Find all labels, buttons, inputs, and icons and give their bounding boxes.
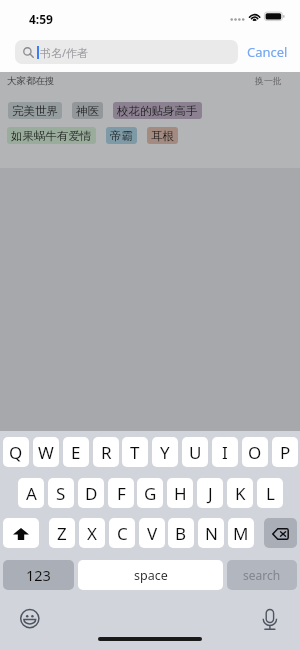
staticText: M xyxy=(233,522,249,545)
button[interactable]: I xyxy=(212,437,238,467)
button[interactable]: Emoji xyxy=(18,607,42,631)
button[interactable]: O xyxy=(242,437,268,467)
button[interactable]: U xyxy=(182,437,208,467)
staticText: W xyxy=(38,441,54,464)
button[interactable]: N xyxy=(198,518,224,548)
button[interactable]: 123 xyxy=(3,560,74,590)
button[interactable]: J xyxy=(197,478,223,508)
button[interactable]: R xyxy=(93,437,119,467)
staticText: 帝霸 xyxy=(110,129,133,143)
staticText: X xyxy=(87,522,97,545)
staticText: Z xyxy=(57,522,67,545)
button[interactable]: 书名/作者 xyxy=(15,40,238,64)
staticText: E xyxy=(71,441,81,464)
button[interactable]: L xyxy=(257,478,283,508)
button[interactable]: F xyxy=(108,478,134,508)
staticText: D xyxy=(85,482,98,505)
button[interactable]: M xyxy=(228,518,254,548)
staticText: P xyxy=(280,441,291,464)
button[interactable]: search xyxy=(227,560,297,590)
button[interactable]: K xyxy=(227,478,253,508)
button[interactable]: H xyxy=(167,478,193,508)
staticText: 123 xyxy=(26,565,51,585)
button[interactable]: 校花的贴身高手 xyxy=(113,102,202,119)
staticText: B xyxy=(175,522,187,545)
button[interactable]: 帝霸 xyxy=(106,127,137,144)
staticText: 完美世界 xyxy=(12,104,58,118)
staticText: 书名/作者 xyxy=(40,45,89,60)
staticText: F xyxy=(117,482,126,505)
staticText: I xyxy=(222,441,228,464)
staticText: S xyxy=(56,482,66,505)
staticText: T xyxy=(130,441,140,464)
button[interactable]: Cancel xyxy=(244,42,289,62)
button[interactable]: A xyxy=(18,478,44,508)
button[interactable]: Shift xyxy=(3,518,39,548)
staticText: search xyxy=(243,567,281,583)
button[interactable]: B xyxy=(168,518,194,548)
button[interactable]: space xyxy=(78,560,223,590)
button[interactable]: V xyxy=(139,518,165,548)
staticText: space xyxy=(134,567,168,584)
button[interactable]: 神医 xyxy=(72,102,103,119)
button[interactable]: 耳根 xyxy=(147,127,178,144)
staticText: V xyxy=(147,522,158,545)
button[interactable]: C xyxy=(109,518,135,548)
staticText: R xyxy=(101,441,112,464)
staticText: U xyxy=(189,441,202,464)
button[interactable]: P xyxy=(272,437,298,467)
staticText: L xyxy=(266,482,275,505)
staticText: C xyxy=(117,522,128,545)
button[interactable]: E xyxy=(63,437,89,467)
button[interactable]: X xyxy=(79,518,105,548)
button[interactable]: 换一批 xyxy=(251,72,285,86)
button[interactable]: S xyxy=(48,478,74,508)
staticText: 大家都在搜 xyxy=(7,75,55,87)
staticText: 换一批 xyxy=(255,75,282,86)
button[interactable]: Backspace xyxy=(264,518,297,548)
staticText: 如果蜗牛有爱情 xyxy=(11,129,92,143)
button[interactable]: 完美世界 xyxy=(8,102,62,119)
button[interactable]: 如果蜗牛有爱情 xyxy=(7,127,96,144)
staticText: 4:59 xyxy=(29,11,53,27)
button[interactable]: T xyxy=(122,437,148,467)
button[interactable]: Q xyxy=(3,437,29,467)
staticText: 神医 xyxy=(76,104,99,118)
button[interactable]: Y xyxy=(152,437,178,467)
staticText: A xyxy=(26,482,37,505)
staticText: Q xyxy=(9,441,23,464)
staticText: K xyxy=(235,482,246,505)
staticText: Y xyxy=(160,441,170,464)
button[interactable]: D xyxy=(78,478,104,508)
staticText: N xyxy=(205,522,218,545)
staticText: Cancel xyxy=(247,43,288,61)
button[interactable]: G xyxy=(137,478,163,508)
staticText: G xyxy=(144,482,157,505)
staticText: 校花的贴身高手 xyxy=(117,104,198,118)
staticText: H xyxy=(174,482,187,505)
staticText: 耳根 xyxy=(151,129,174,143)
staticText: O xyxy=(248,441,262,464)
staticText: J xyxy=(208,482,213,505)
button[interactable]: Dictation xyxy=(262,608,279,631)
button[interactable]: Z xyxy=(49,518,75,548)
button[interactable]: W xyxy=(33,437,59,467)
